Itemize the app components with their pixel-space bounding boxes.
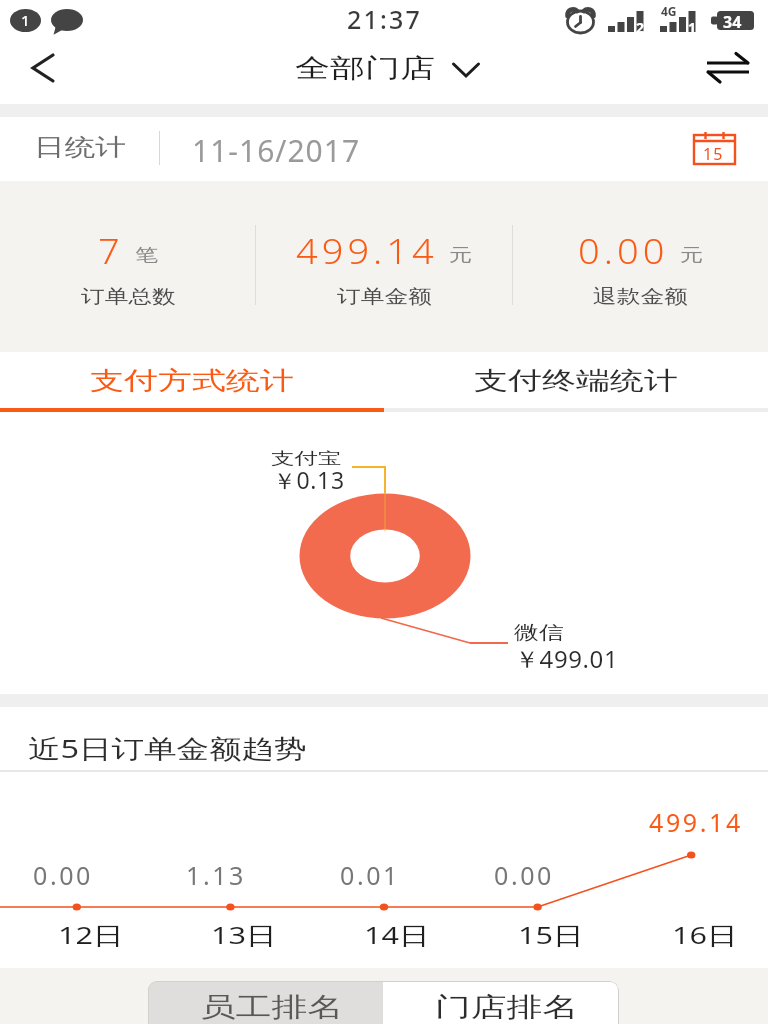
staticText: 订单金额: [337, 285, 432, 309]
staticText: 元: [449, 244, 472, 267]
staticText: 支付宝: [271, 447, 342, 468]
staticText: 0.00: [494, 858, 555, 892]
button[interactable]: Back: [8, 40, 78, 96]
button[interactable]: 员工排名: [148, 981, 383, 1024]
button[interactable]: 支付终端统计: [384, 352, 768, 412]
staticText: 7: [98, 226, 124, 274]
staticText: 13日: [211, 919, 277, 951]
staticText: 15日: [518, 919, 584, 951]
staticText: 笔: [135, 244, 158, 267]
button[interactable]: 全部门店: [295, 46, 480, 90]
button[interactable]: 0.00: [512, 182, 768, 353]
button[interactable]: Switch view: [688, 40, 768, 96]
staticText: 支付方式统计: [90, 365, 294, 396]
staticText: 0.00: [578, 226, 669, 274]
staticText: 支付终端统计: [474, 365, 678, 396]
button[interactable]: Pick date: [686, 127, 738, 171]
staticText: 员工排名: [200, 991, 344, 1024]
staticText: ￥0.13: [273, 464, 345, 495]
staticText: 499.14: [296, 226, 438, 274]
staticText: 15: [703, 143, 724, 165]
staticText: 1.13: [186, 858, 247, 892]
staticText: 全部门店: [295, 52, 435, 84]
staticText: 0.01: [340, 858, 401, 892]
button[interactable]: 日统计: [0, 117, 768, 181]
staticText: 近5日订单金额趋势: [28, 731, 307, 765]
staticText: 微信: [514, 621, 564, 644]
staticText: 16日: [672, 919, 738, 951]
button[interactable]: 499.14: [256, 182, 512, 353]
staticText: 订单总数: [81, 285, 176, 309]
button[interactable]: 门店排名: [383, 981, 619, 1024]
staticText: 11-16/2017: [192, 130, 361, 171]
staticText: 元: [680, 244, 703, 267]
staticText: 0.00: [33, 858, 94, 892]
staticText: 日统计: [34, 133, 126, 162]
button[interactable]: 7: [0, 182, 256, 353]
staticText: 4G: [661, 3, 677, 19]
staticText: 1: [21, 10, 30, 30]
staticText: 34: [723, 11, 742, 33]
staticText: ￥499.01: [515, 642, 619, 675]
staticText: 2: [636, 18, 645, 37]
staticText: 12日: [58, 919, 124, 951]
staticText: 14日: [364, 919, 430, 951]
staticText: 1: [688, 18, 697, 37]
staticText: 499.14: [649, 805, 743, 839]
staticText: 退款金额: [593, 285, 688, 309]
button[interactable]: 支付方式统计: [0, 352, 384, 412]
staticText: 门店排名: [435, 991, 579, 1024]
staticText: 21:37: [347, 2, 423, 36]
